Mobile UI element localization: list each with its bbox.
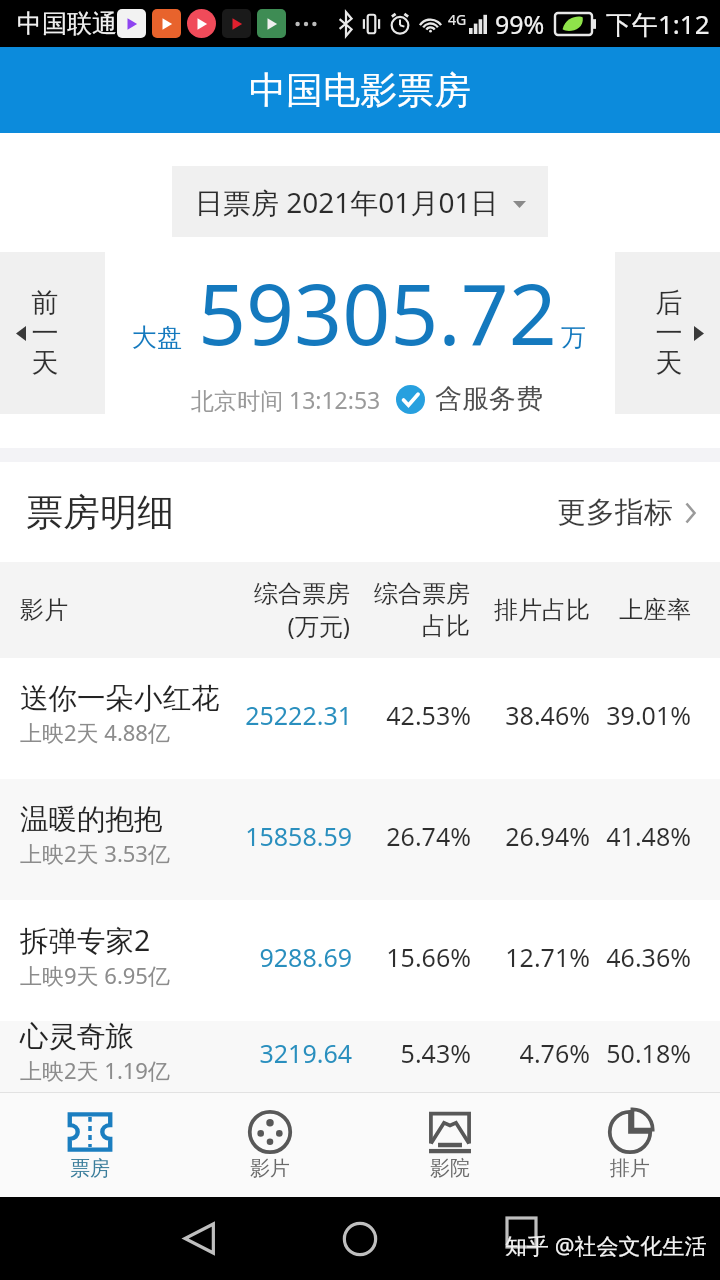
staticText: 心灵奇旅 [20, 1019, 134, 1055]
staticText: 万 [561, 322, 586, 353]
staticText: 38.46% [450, 698, 590, 732]
button[interactable]: 排片 [540, 1093, 720, 1197]
staticText: 41.48% [551, 819, 691, 853]
staticText: 票房 [70, 1156, 110, 1181]
staticText: 拆弹专家2 [20, 921, 151, 960]
staticText: 15.66% [331, 940, 471, 974]
button[interactable]: Back [183, 1222, 216, 1255]
staticText: 59305.72 [198, 255, 557, 369]
staticText: 排片占比 [460, 595, 590, 625]
staticText: 42.53% [331, 698, 471, 732]
staticText: 影片 [250, 1156, 290, 1181]
button[interactable]: Home [343, 1222, 377, 1256]
staticText: 3219.64 [212, 1036, 352, 1070]
staticText: 前 一 天 [30, 286, 60, 380]
staticText: 上座率 [561, 595, 691, 625]
staticText: 大盘 [132, 322, 182, 353]
staticText: 99% [495, 7, 545, 41]
staticText: 后 一 天 [654, 286, 684, 380]
button[interactable]: 影院 [360, 1093, 540, 1197]
button[interactable]: 拆弹专家2 [0, 900, 720, 1021]
staticText: 综合票房 占比 [340, 579, 470, 641]
staticText: 日票房 2021年01月01日 [195, 183, 499, 221]
staticText: 中国电影票房 [249, 67, 471, 114]
staticText: 15858.59 [212, 819, 352, 853]
staticText: 排片 [610, 1156, 650, 1181]
button[interactable]: 心灵奇旅 [0, 1021, 720, 1092]
staticText: 含服务费 [435, 382, 543, 416]
button[interactable]: 温暖的抱抱 [0, 779, 720, 900]
staticText: 25222.31 [212, 698, 352, 732]
staticText: 影片 [20, 595, 68, 625]
button[interactable]: 更多指标 [557, 494, 696, 531]
staticText: 送你一朵小红花 [20, 681, 220, 717]
staticText: 上映9天 6.95亿 [20, 960, 170, 990]
staticText: 上映2天 1.19亿 [20, 1055, 170, 1085]
staticText: 5.43% [331, 1036, 471, 1070]
staticText: 更多指标 [557, 494, 673, 531]
staticText: 4.76% [450, 1036, 590, 1070]
staticText: 50.18% [551, 1036, 691, 1070]
button[interactable]: 后一天 [615, 252, 720, 414]
staticText: 影院 [430, 1156, 470, 1181]
button[interactable]: Recents [507, 1218, 536, 1247]
staticText: 26.74% [331, 819, 471, 853]
button[interactable]: 送你一朵小红花 [0, 658, 720, 779]
button[interactable]: 前一天 [0, 252, 105, 414]
staticText: 上映2天 3.53亿 [20, 838, 170, 868]
staticText: 9288.69 [212, 940, 352, 974]
staticText: 北京时间 13:12:53 [191, 384, 381, 415]
staticText: 温暖的抱抱 [20, 802, 163, 838]
staticText: 39.01% [551, 698, 691, 732]
button[interactable]: 票房 [0, 1093, 180, 1197]
staticText: 12.71% [450, 940, 590, 974]
staticText: 综合票房 (万元) [220, 579, 350, 642]
button[interactable]: 影片 [180, 1093, 360, 1197]
staticText: 上映2天 4.88亿 [20, 717, 170, 747]
staticText: 26.94% [450, 819, 590, 853]
staticText: 中国联通 [17, 8, 117, 39]
button[interactable]: 日票房 2021年01月01日 [172, 166, 548, 237]
staticText: 下午1:12 [606, 6, 710, 42]
staticText: 46.36% [551, 940, 691, 974]
staticText: 4G [448, 10, 467, 29]
staticText: 知乎 @社会文化生活 [505, 1230, 707, 1260]
staticText: 票房明细 [26, 489, 174, 536]
